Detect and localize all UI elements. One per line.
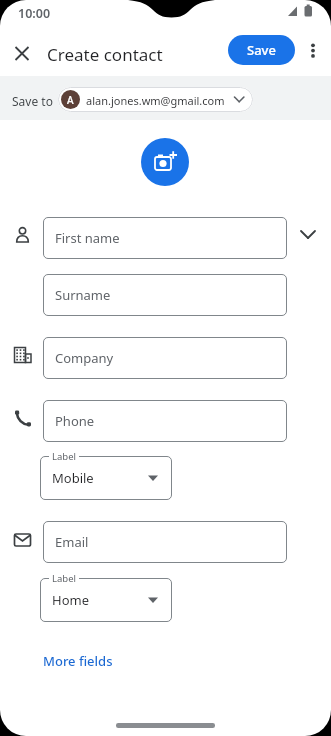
button[interactable] [303, 40, 323, 60]
staticText: Label [52, 450, 76, 463]
button[interactable]: Mobile [40, 456, 172, 500]
staticText: alan.jones.wm@gmail.com [86, 93, 225, 108]
button[interactable] [8, 38, 36, 66]
button[interactable]: Home [40, 578, 172, 622]
staticText: First name [55, 229, 120, 247]
staticText: A [67, 93, 74, 107]
button[interactable]: Email [43, 521, 287, 563]
button[interactable]: A [58, 87, 253, 112]
button[interactable] [141, 138, 189, 186]
staticText: Home [52, 591, 89, 609]
staticText: Save to [12, 93, 53, 109]
staticText: Mobile [52, 469, 94, 487]
button[interactable]: First name [43, 217, 287, 259]
staticText: Surname [55, 286, 111, 304]
staticText: Email [55, 533, 89, 551]
button[interactable]: Surname [43, 274, 287, 316]
staticText: Label [52, 572, 76, 585]
button[interactable]: Save [228, 35, 295, 65]
button[interactable]: More fields [43, 652, 113, 670]
staticText: Phone [55, 412, 95, 430]
staticText: Create contact [47, 43, 163, 66]
staticText: 10:00 [18, 5, 51, 22]
staticText: Save [247, 41, 276, 59]
button[interactable]: Phone [43, 400, 287, 442]
staticText: Company [55, 349, 114, 367]
button[interactable]: Company [43, 337, 287, 379]
